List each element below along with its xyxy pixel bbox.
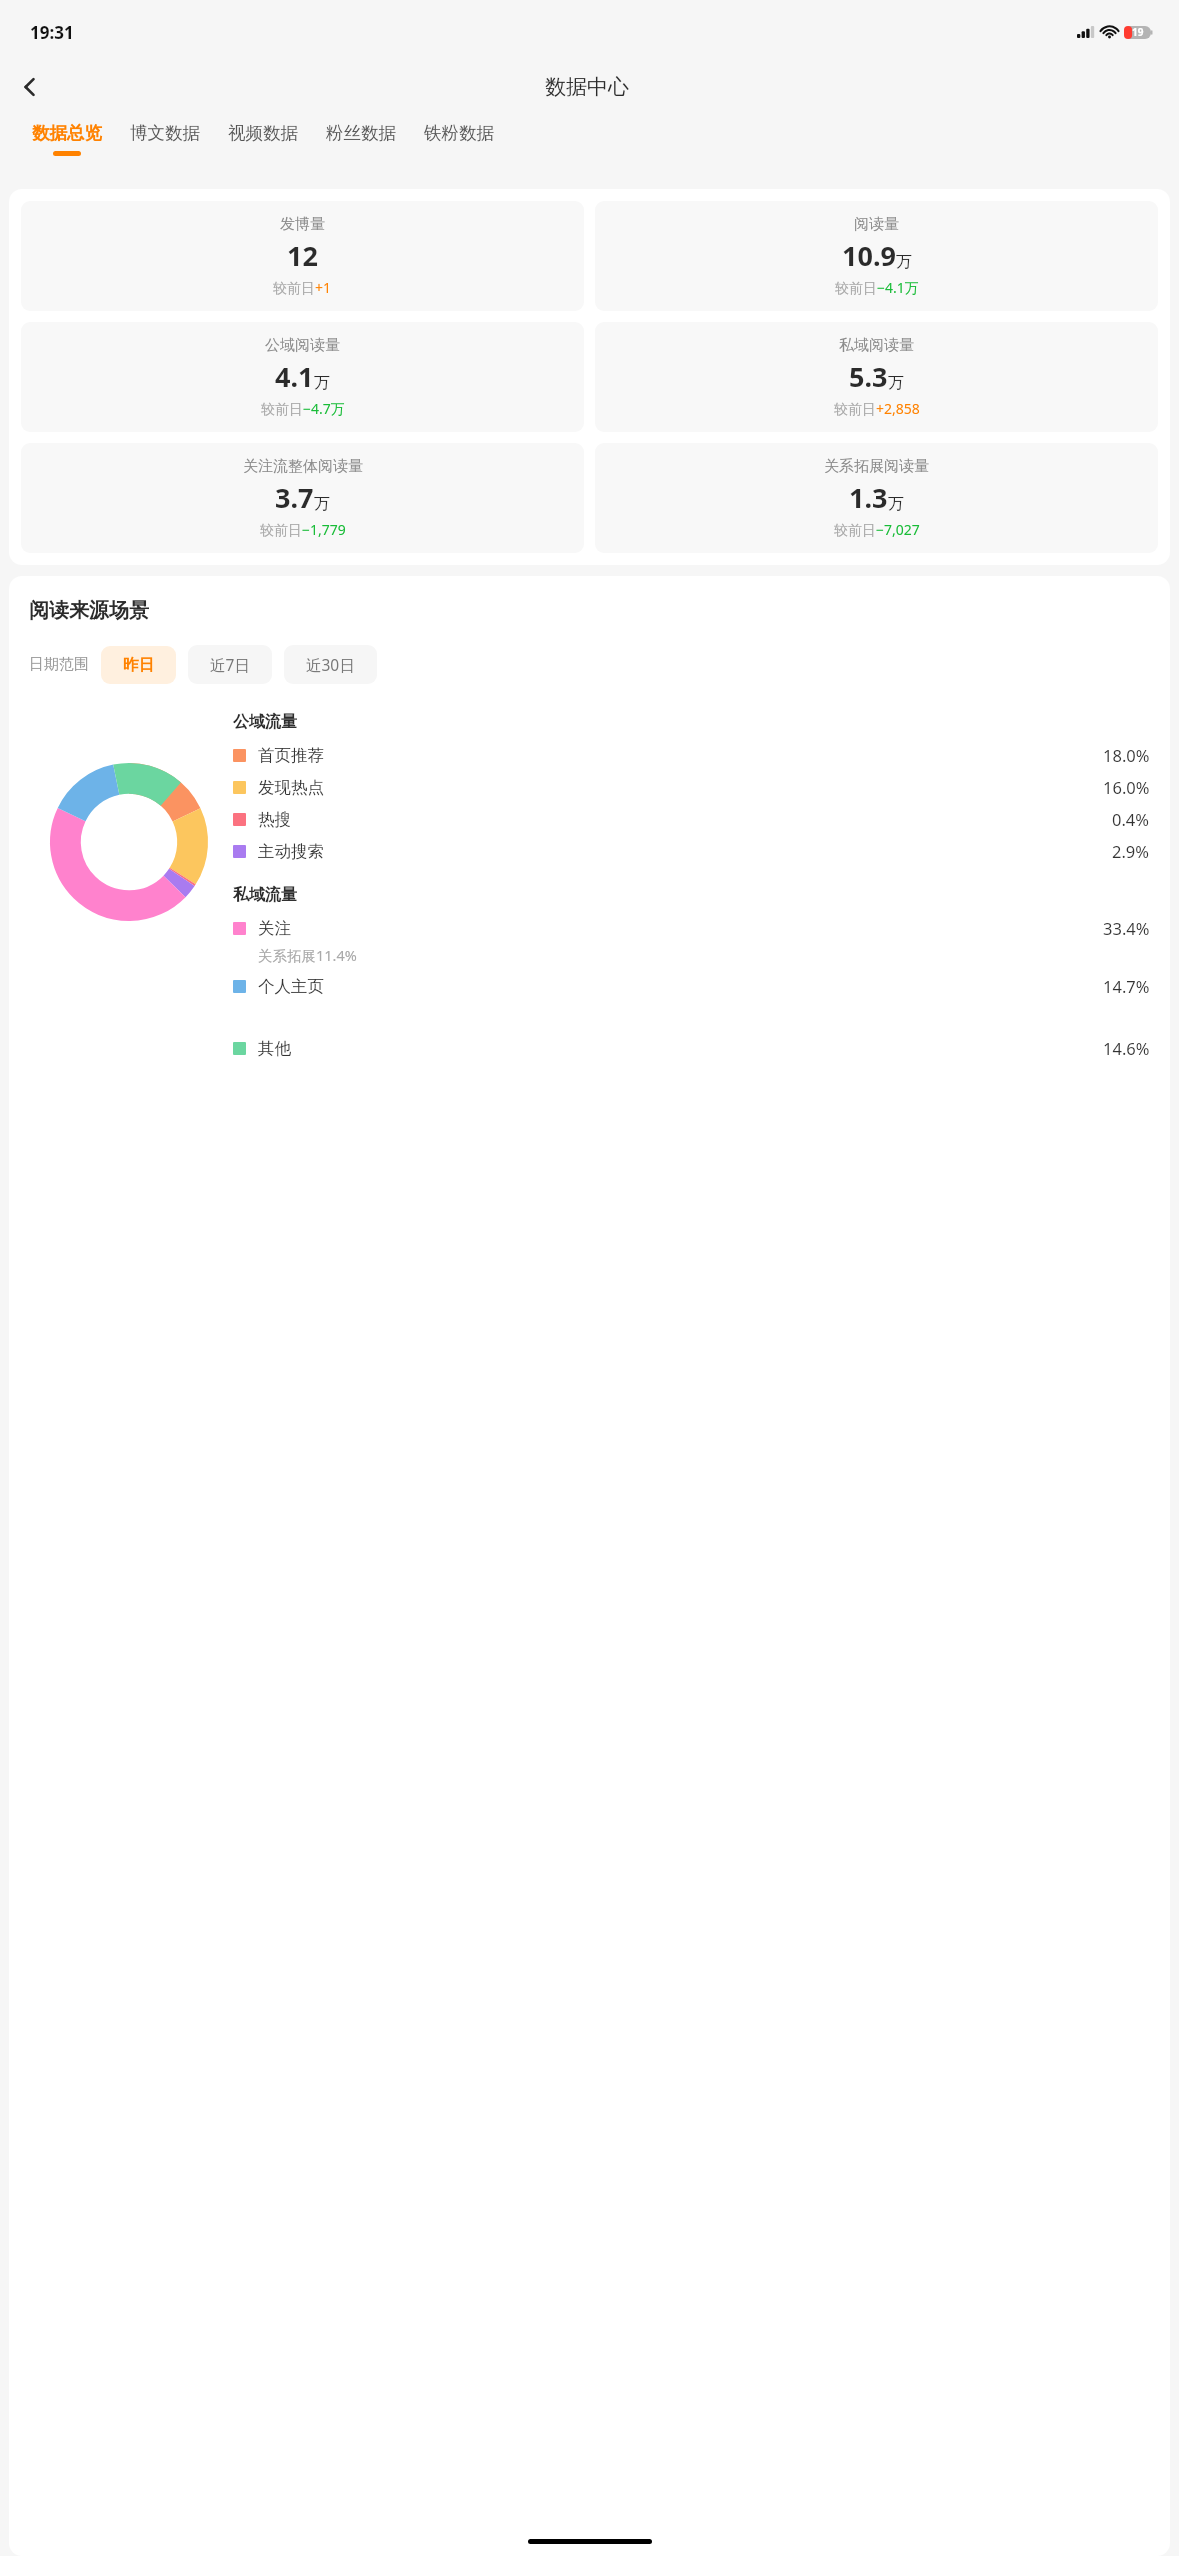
button[interactable]: 数据总览	[18, 116, 116, 162]
staticText: 阅读量	[854, 215, 899, 234]
button[interactable]: 私域阅读量	[595, 322, 1158, 432]
staticText: 较前日−1,779	[260, 520, 346, 539]
staticText: 私域阅读量	[839, 336, 914, 355]
button[interactable]: 热搜	[233, 803, 1152, 835]
staticText: 视频数据	[228, 122, 298, 144]
button[interactable]: 首页推荐	[233, 739, 1152, 771]
staticText: 0.4%	[1112, 808, 1150, 830]
staticText: 关注	[258, 918, 1103, 939]
button[interactable]: 近7日	[188, 645, 272, 684]
button[interactable]: 发现热点	[233, 771, 1152, 803]
staticText: 万	[314, 494, 330, 514]
staticText: 其他	[258, 1038, 1103, 1059]
staticText: 万	[314, 373, 330, 393]
staticText: 5.3	[849, 358, 888, 395]
staticText: 数据中心	[545, 74, 629, 100]
button[interactable]: 其他	[233, 1032, 1152, 1064]
staticText: 热搜	[258, 809, 1112, 830]
staticText: 个人主页	[258, 976, 1103, 997]
staticText: 14.7%	[1103, 975, 1150, 997]
staticText: 阅读来源场景	[29, 598, 149, 623]
button[interactable]: 近30日	[284, 645, 377, 684]
staticText: 首页推荐	[258, 745, 1103, 766]
button[interactable]: 关系拓展阅读量	[595, 443, 1158, 553]
staticText: 万	[888, 494, 904, 514]
staticText: 近7日	[210, 654, 250, 675]
button[interactable]: 昨日	[101, 646, 176, 684]
button[interactable]: 关注流整体阅读量	[21, 443, 584, 553]
button[interactable]: Back	[6, 63, 54, 111]
staticText: 12	[287, 237, 318, 274]
button[interactable]: 铁粉数据	[410, 116, 508, 157]
staticText: 10.9	[842, 237, 896, 274]
staticText: 19	[1132, 25, 1144, 39]
staticText: 33.4%	[1103, 917, 1150, 939]
staticText: 数据总览	[32, 122, 102, 144]
button[interactable]: 粉丝数据	[312, 116, 410, 157]
staticText: 较前日+1	[273, 278, 332, 297]
staticText: 16.0%	[1103, 776, 1150, 798]
staticText: 较前日+2,858	[834, 399, 920, 418]
staticText: 发现热点	[258, 777, 1103, 798]
staticText: 公域阅读量	[265, 336, 340, 355]
staticText: 较前日−7,027	[834, 520, 920, 539]
staticText: 博文数据	[130, 122, 200, 144]
staticText: 3.7	[275, 479, 314, 516]
staticText: 18.0%	[1103, 744, 1150, 766]
staticText: 万	[888, 373, 904, 393]
button[interactable]: 公域阅读量	[21, 322, 584, 432]
staticText: 关系拓展11.4%	[258, 945, 357, 965]
staticText: 4.1	[275, 358, 314, 395]
staticText: 日期范围	[29, 655, 89, 674]
staticText: 主动搜索	[258, 841, 1112, 862]
staticText: 铁粉数据	[424, 122, 494, 144]
button[interactable]: 发博量	[21, 201, 584, 311]
button[interactable]: 主动搜索	[233, 835, 1152, 867]
staticText: 近30日	[306, 654, 355, 675]
staticText: 发博量	[280, 215, 325, 234]
staticText: 1.3	[849, 479, 888, 516]
staticText: 公域流量	[233, 712, 297, 732]
staticText: 14.6%	[1103, 1037, 1150, 1059]
staticText: 关注流整体阅读量	[243, 457, 363, 476]
staticText: 19:31	[30, 21, 74, 44]
staticText: 较前日−4.7万	[261, 399, 345, 418]
staticText: 较前日−4.1万	[835, 278, 919, 297]
button[interactable]: 阅读量	[595, 201, 1158, 311]
button[interactable]: 个人主页	[233, 970, 1152, 1002]
button[interactable]: 视频数据	[214, 116, 312, 157]
button[interactable]: 关注	[233, 912, 1152, 944]
button[interactable]: 博文数据	[116, 116, 214, 157]
staticText: 昨日	[123, 655, 154, 675]
staticText: 万	[896, 252, 912, 272]
staticText: 粉丝数据	[326, 122, 396, 144]
staticText: 关系拓展阅读量	[824, 457, 929, 476]
staticText: 私域流量	[233, 885, 297, 905]
staticText: 2.9%	[1112, 840, 1150, 862]
